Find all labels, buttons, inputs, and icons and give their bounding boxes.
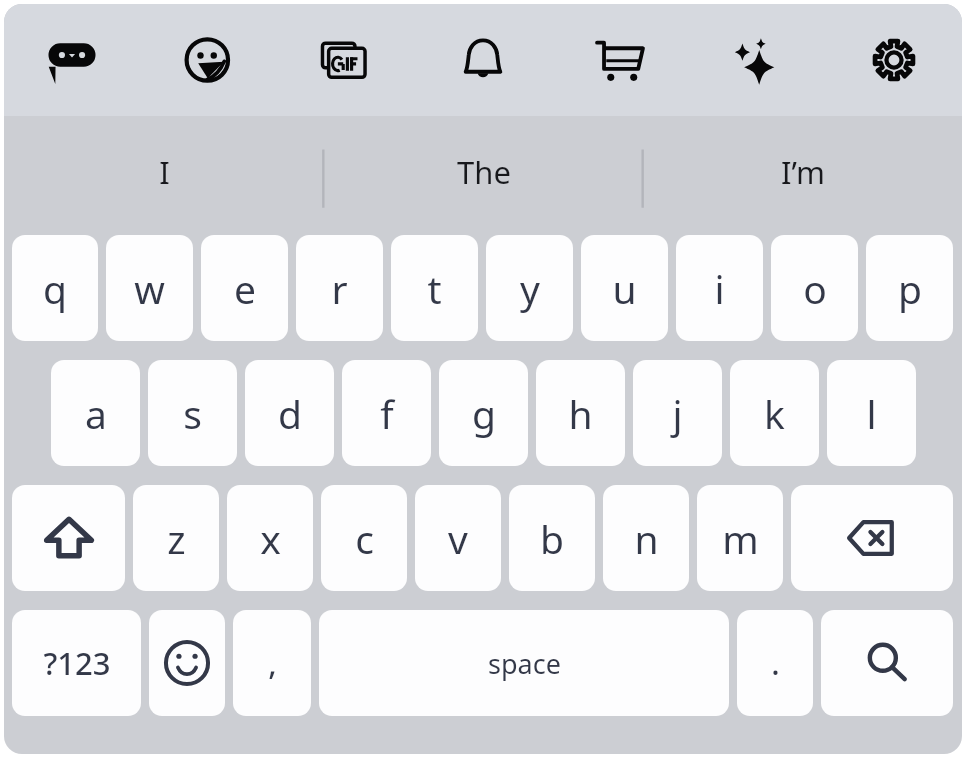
button[interactable]: AI suggestions — [688, 4, 825, 116]
staticText: d — [278, 387, 302, 440]
button[interactable]: o — [771, 235, 858, 341]
button[interactable]: r — [296, 235, 383, 341]
staticText: r — [331, 262, 348, 315]
button[interactable]: i — [676, 235, 763, 341]
button[interactable]: x — [227, 485, 313, 591]
staticText: v — [448, 512, 468, 565]
button[interactable]: Backspace — [791, 485, 953, 591]
button[interactable]: e — [201, 235, 288, 341]
staticText: w — [134, 262, 165, 315]
staticText: j — [672, 387, 683, 440]
button[interactable]: y — [486, 235, 573, 341]
staticText: q — [43, 262, 67, 315]
button[interactable]: b — [509, 485, 595, 591]
staticText: m — [722, 512, 759, 565]
button[interactable]: Chat suggestions — [4, 4, 140, 116]
button[interactable]: f — [342, 360, 431, 466]
button[interactable]: q — [12, 235, 98, 341]
button[interactable]: , — [233, 610, 311, 716]
button[interactable]: . — [737, 610, 813, 716]
staticText: x — [260, 512, 281, 565]
button[interactable]: Emoji — [149, 610, 225, 716]
staticText: u — [612, 262, 637, 315]
staticText: s — [183, 387, 202, 440]
staticText: ?123 — [43, 642, 111, 684]
button[interactable]: n — [603, 485, 689, 591]
button[interactable]: c — [321, 485, 407, 591]
staticText: g — [472, 387, 496, 440]
button[interactable]: j — [633, 360, 722, 466]
button[interactable]: g — [439, 360, 528, 466]
button[interactable]: t — [391, 235, 478, 341]
staticText: . — [771, 642, 780, 684]
button[interactable]: space — [319, 610, 729, 716]
staticText: z — [167, 512, 186, 565]
staticText: l — [866, 387, 877, 440]
staticText: b — [540, 512, 564, 565]
button[interactable]: v — [415, 485, 501, 591]
staticText: t — [427, 262, 442, 315]
staticText: a — [85, 387, 107, 440]
button[interactable]: k — [730, 360, 819, 466]
staticText: c — [355, 512, 374, 565]
staticText: I — [159, 151, 170, 193]
button[interactable]: a — [51, 360, 140, 466]
button[interactable]: u — [581, 235, 668, 341]
button[interactable]: Notifications — [414, 4, 551, 116]
staticText: i — [714, 262, 725, 315]
staticText: I’m — [781, 151, 825, 193]
staticText: h — [568, 387, 593, 440]
staticText: y — [520, 262, 540, 315]
button[interactable]: l — [827, 360, 916, 466]
button[interactable]: The — [324, 116, 643, 228]
button[interactable]: GIF — [277, 4, 414, 116]
button[interactable]: d — [245, 360, 334, 466]
button[interactable]: p — [866, 235, 953, 341]
staticText: The — [457, 151, 511, 193]
staticText: k — [764, 387, 785, 440]
button[interactable]: Shopping — [551, 4, 688, 116]
button[interactable]: Shift — [12, 485, 125, 591]
button[interactable]: z — [133, 485, 219, 591]
staticText: o — [803, 262, 827, 315]
button[interactable]: m — [697, 485, 783, 591]
button[interactable]: w — [106, 235, 193, 341]
staticText: p — [898, 262, 922, 315]
button[interactable]: s — [148, 360, 237, 466]
button[interactable]: Settings — [825, 4, 962, 116]
button[interactable]: ?123 — [12, 610, 141, 716]
staticText: f — [380, 387, 394, 440]
button[interactable]: Search — [821, 610, 953, 716]
button[interactable]: I’m — [643, 116, 962, 228]
staticText: space — [488, 645, 561, 682]
staticText: n — [634, 512, 659, 565]
staticText: , — [268, 642, 277, 684]
button[interactable]: h — [536, 360, 625, 466]
button[interactable]: Stickers — [140, 4, 277, 116]
staticText: e — [234, 262, 256, 315]
button[interactable]: I — [4, 116, 324, 228]
